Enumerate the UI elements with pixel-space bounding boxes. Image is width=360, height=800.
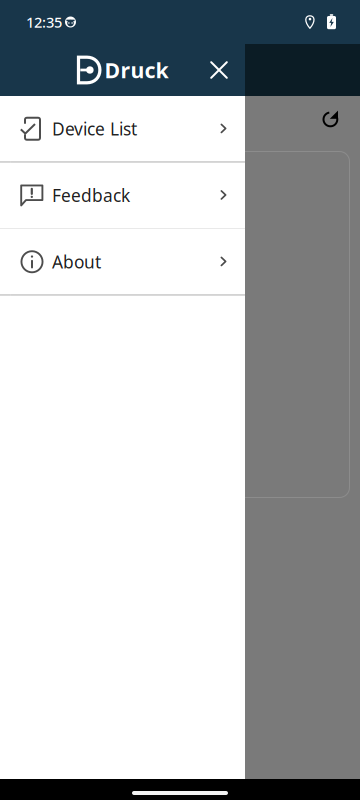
button[interactable]: Device List (0, 96, 245, 161)
staticText: Druck (104, 56, 168, 84)
button[interactable]: Close menu (202, 53, 236, 87)
button[interactable]: Feedback (0, 162, 245, 228)
staticText: About (52, 250, 101, 273)
button[interactable]: About (0, 229, 245, 294)
staticText: Feedback (52, 184, 130, 207)
staticText: Device List (52, 117, 137, 140)
staticText: 12:35 (26, 12, 62, 32)
button[interactable]: Refresh (321, 108, 343, 130)
